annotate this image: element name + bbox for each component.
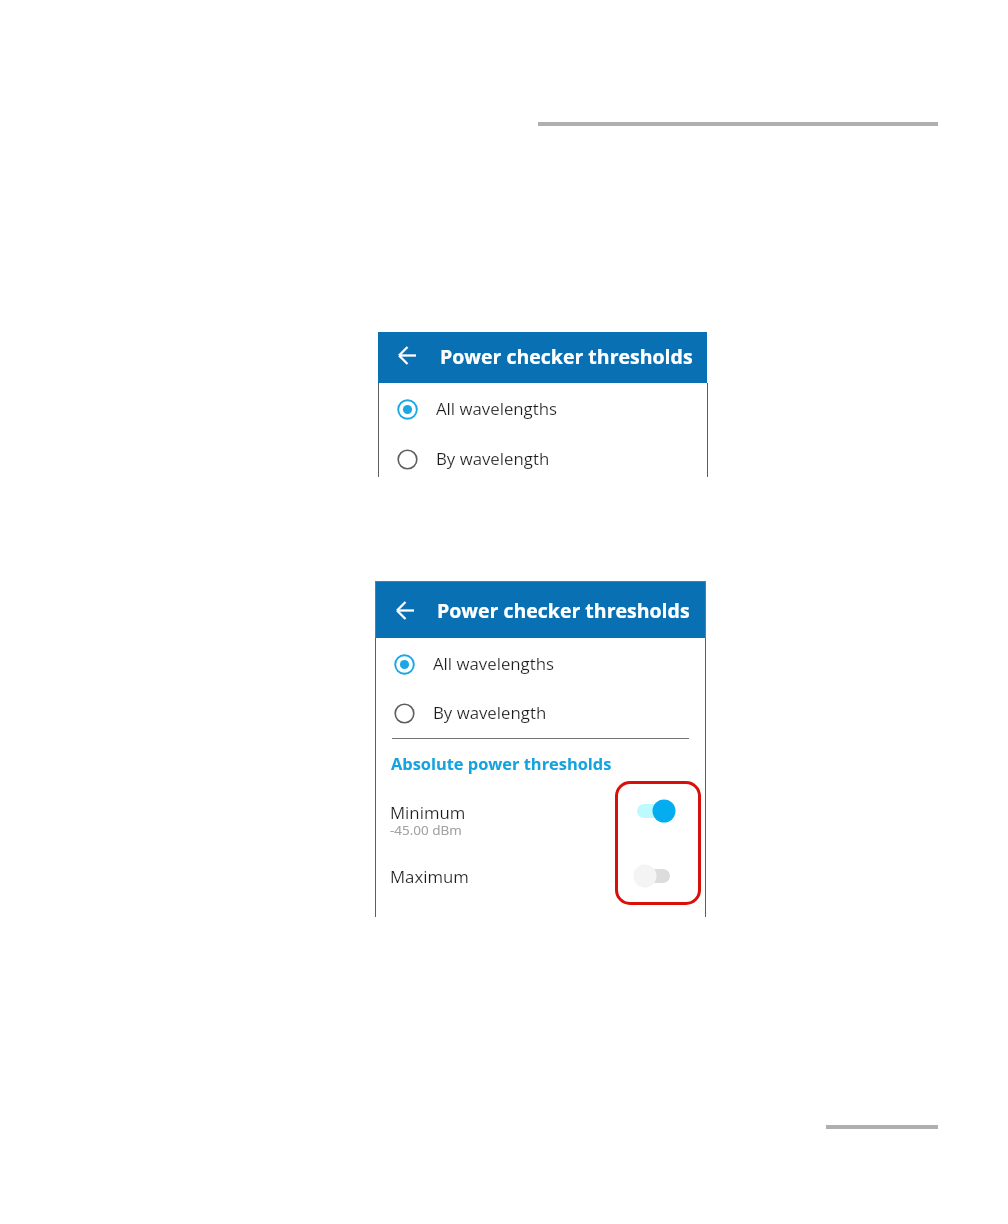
staticText: -45.00 dBm: [390, 821, 462, 839]
button[interactable]: [376, 688, 705, 737]
staticText: By wavelength: [433, 701, 547, 724]
button[interactable]: Maximum: [376, 856, 705, 904]
button[interactable]: Navigate up: [393, 598, 418, 623]
button[interactable]: [376, 582, 705, 638]
button[interactable]: Maximum threshold, off: [632, 862, 678, 890]
staticText: All wavelengths: [433, 652, 555, 675]
button[interactable]: Minimum: [376, 792, 705, 848]
button[interactable]: [379, 434, 707, 477]
staticText: Absolute power thresholds: [391, 752, 612, 774]
button[interactable]: Minimum threshold, on: [632, 797, 678, 825]
staticText: All wavelengths: [436, 397, 558, 420]
staticText: Power checker thresholds: [437, 597, 690, 624]
button[interactable]: [376, 639, 705, 688]
button[interactable]: [378, 332, 707, 383]
staticText: Minimum: [390, 801, 466, 824]
button[interactable]: Navigate up: [395, 343, 420, 368]
staticText: Maximum: [390, 865, 469, 888]
staticText: By wavelength: [436, 447, 550, 470]
staticText: Power checker thresholds: [440, 343, 693, 370]
button[interactable]: [379, 384, 707, 433]
